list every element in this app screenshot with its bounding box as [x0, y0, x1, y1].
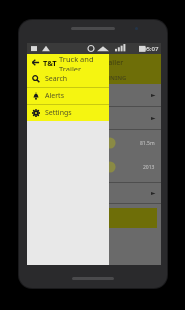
button[interactable]	[31, 208, 157, 228]
staticText: T&T	[43, 58, 59, 68]
button[interactable]: Search	[27, 71, 109, 87]
button[interactable]: Settings	[27, 105, 109, 121]
button[interactable]	[27, 107, 161, 129]
staticText: Alerts	[45, 91, 64, 101]
staticText: Search	[45, 74, 68, 84]
staticText: T&T Truck and Trailer	[53, 58, 124, 68]
button[interactable]	[27, 84, 161, 106]
button[interactable]: Alerts	[27, 88, 109, 104]
staticText: 2013	[143, 164, 155, 171]
staticText: WINNING	[97, 74, 127, 82]
button[interactable]: Back	[31, 58, 40, 67]
staticText: Truck and Trailer	[59, 54, 109, 71]
button[interactable]	[27, 183, 161, 203]
staticText: 81.5m	[140, 140, 155, 147]
staticText: 15:07	[143, 45, 159, 53]
staticText: Settings	[45, 108, 72, 118]
